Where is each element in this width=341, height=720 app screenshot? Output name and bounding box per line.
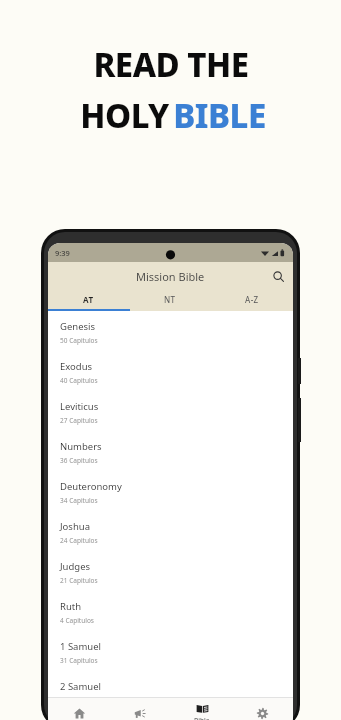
staticText: Genesis — [60, 320, 96, 333]
button[interactable]: Genesis — [48, 311, 293, 351]
staticText: 21 Capitulos — [60, 576, 98, 585]
button[interactable]: Bible — [171, 698, 232, 720]
staticText: AT — [83, 294, 94, 305]
staticText: Ruth — [60, 600, 82, 613]
staticText: READ THE — [93, 42, 249, 87]
button[interactable]: Joshua — [48, 511, 293, 551]
button[interactable]: A-Z — [211, 290, 293, 309]
staticText: A-Z — [245, 294, 259, 305]
staticText: 40 Capitulos — [60, 376, 98, 385]
staticText: Numbers — [60, 440, 102, 453]
button[interactable]: 1 Samuel — [48, 631, 293, 671]
staticText: 34 Capitulos — [60, 496, 98, 505]
staticText: BIBLE — [173, 93, 266, 138]
staticText: 4 Capitulos — [60, 616, 94, 625]
staticText: Bible — [194, 716, 210, 720]
staticText: 24 Capitulos — [60, 536, 98, 545]
button[interactable]: NT — [129, 290, 211, 309]
staticText: Mission Bible — [136, 269, 205, 284]
staticText: 50 Capitulos — [60, 336, 98, 345]
staticText: 31 Capitulos — [60, 656, 98, 665]
button[interactable]: Announcements — [110, 698, 171, 720]
button[interactable]: Search — [268, 266, 288, 286]
button[interactable]: Home — [48, 698, 110, 720]
staticText: Deuteronomy — [60, 480, 122, 493]
button[interactable]: Mission Bible — [48, 262, 293, 290]
staticText: 36 Capitulos — [60, 456, 98, 465]
button[interactable]: Exodus — [48, 351, 293, 391]
button[interactable]: Leviticus — [48, 391, 293, 431]
staticText: Joshua — [60, 520, 90, 533]
staticText: 27 Capitulos — [60, 416, 98, 425]
staticText: 9:39 — [55, 248, 70, 258]
button[interactable]: Ruth — [48, 591, 293, 631]
staticText: HOLY — [76, 93, 173, 138]
staticText: NT — [164, 294, 176, 305]
button[interactable]: 2 Samuel — [48, 671, 293, 697]
button[interactable]: Numbers — [48, 431, 293, 471]
staticText: Exodus — [60, 360, 93, 373]
staticText: Judges — [60, 560, 91, 573]
button[interactable]: Judges — [48, 551, 293, 591]
button[interactable]: AT — [48, 290, 129, 309]
button[interactable]: Settings — [232, 698, 293, 720]
staticText: Leviticus — [60, 400, 99, 413]
staticText: 2 Samuel — [60, 680, 102, 693]
staticText: 1 Samuel — [60, 640, 102, 653]
button[interactable]: Deuteronomy — [48, 471, 293, 511]
